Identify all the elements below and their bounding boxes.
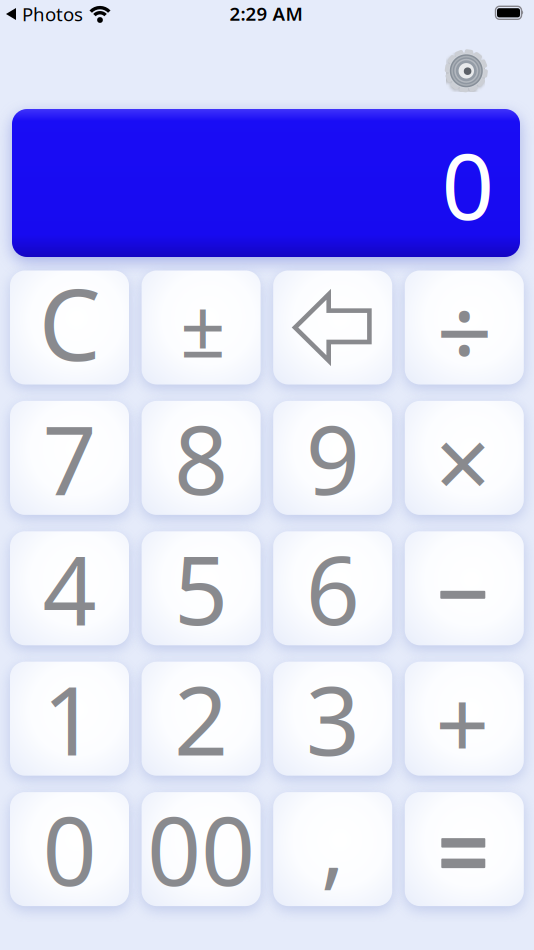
- staticText: ±: [180, 273, 226, 380]
- staticText: 8: [174, 395, 228, 521]
- button[interactable]: 1: [10, 662, 129, 776]
- staticText: 3: [306, 656, 360, 781]
- button[interactable]: 3: [273, 662, 392, 776]
- staticText: 0: [42, 786, 96, 912]
- button[interactable]: C: [10, 270, 129, 384]
- button[interactable]: [273, 270, 392, 384]
- button[interactable]: 2: [142, 662, 261, 776]
- staticText: 0: [441, 123, 494, 245]
- button[interactable]: ±: [142, 270, 261, 384]
- button[interactable]: +: [405, 662, 524, 776]
- staticText: ÷: [436, 265, 492, 396]
- staticText: Photos: [22, 2, 83, 26]
- staticText: 1: [42, 656, 96, 781]
- staticText: 5: [174, 525, 228, 651]
- staticText: ×: [435, 395, 491, 526]
- staticText: 7: [42, 395, 96, 521]
- button[interactable]: 7: [10, 401, 129, 515]
- button[interactable]: [405, 792, 524, 906]
- button[interactable]: [442, 47, 490, 95]
- staticText: 2: [174, 656, 228, 781]
- staticText: +: [435, 660, 489, 785]
- button[interactable]: Photos: [6, 2, 111, 26]
- button[interactable]: ×: [405, 401, 524, 515]
- button[interactable]: 6: [273, 531, 392, 645]
- staticText: 00: [147, 786, 255, 912]
- button[interactable]: ÷: [405, 270, 524, 384]
- button[interactable]: 5: [142, 531, 261, 645]
- button[interactable]: [405, 531, 524, 645]
- staticText: 6: [306, 525, 360, 651]
- button[interactable]: 00: [142, 792, 261, 906]
- staticText: 4: [42, 525, 96, 651]
- staticText: C: [38, 257, 100, 388]
- button[interactable]: ,: [273, 792, 392, 906]
- button[interactable]: 9: [273, 401, 392, 515]
- button[interactable]: 8: [142, 401, 261, 515]
- staticText: ,: [321, 783, 345, 903]
- button[interactable]: 0: [10, 792, 129, 906]
- staticText: 9: [306, 395, 360, 521]
- staticText: 2:29 AM: [229, 1, 302, 26]
- button[interactable]: 4: [10, 531, 129, 645]
